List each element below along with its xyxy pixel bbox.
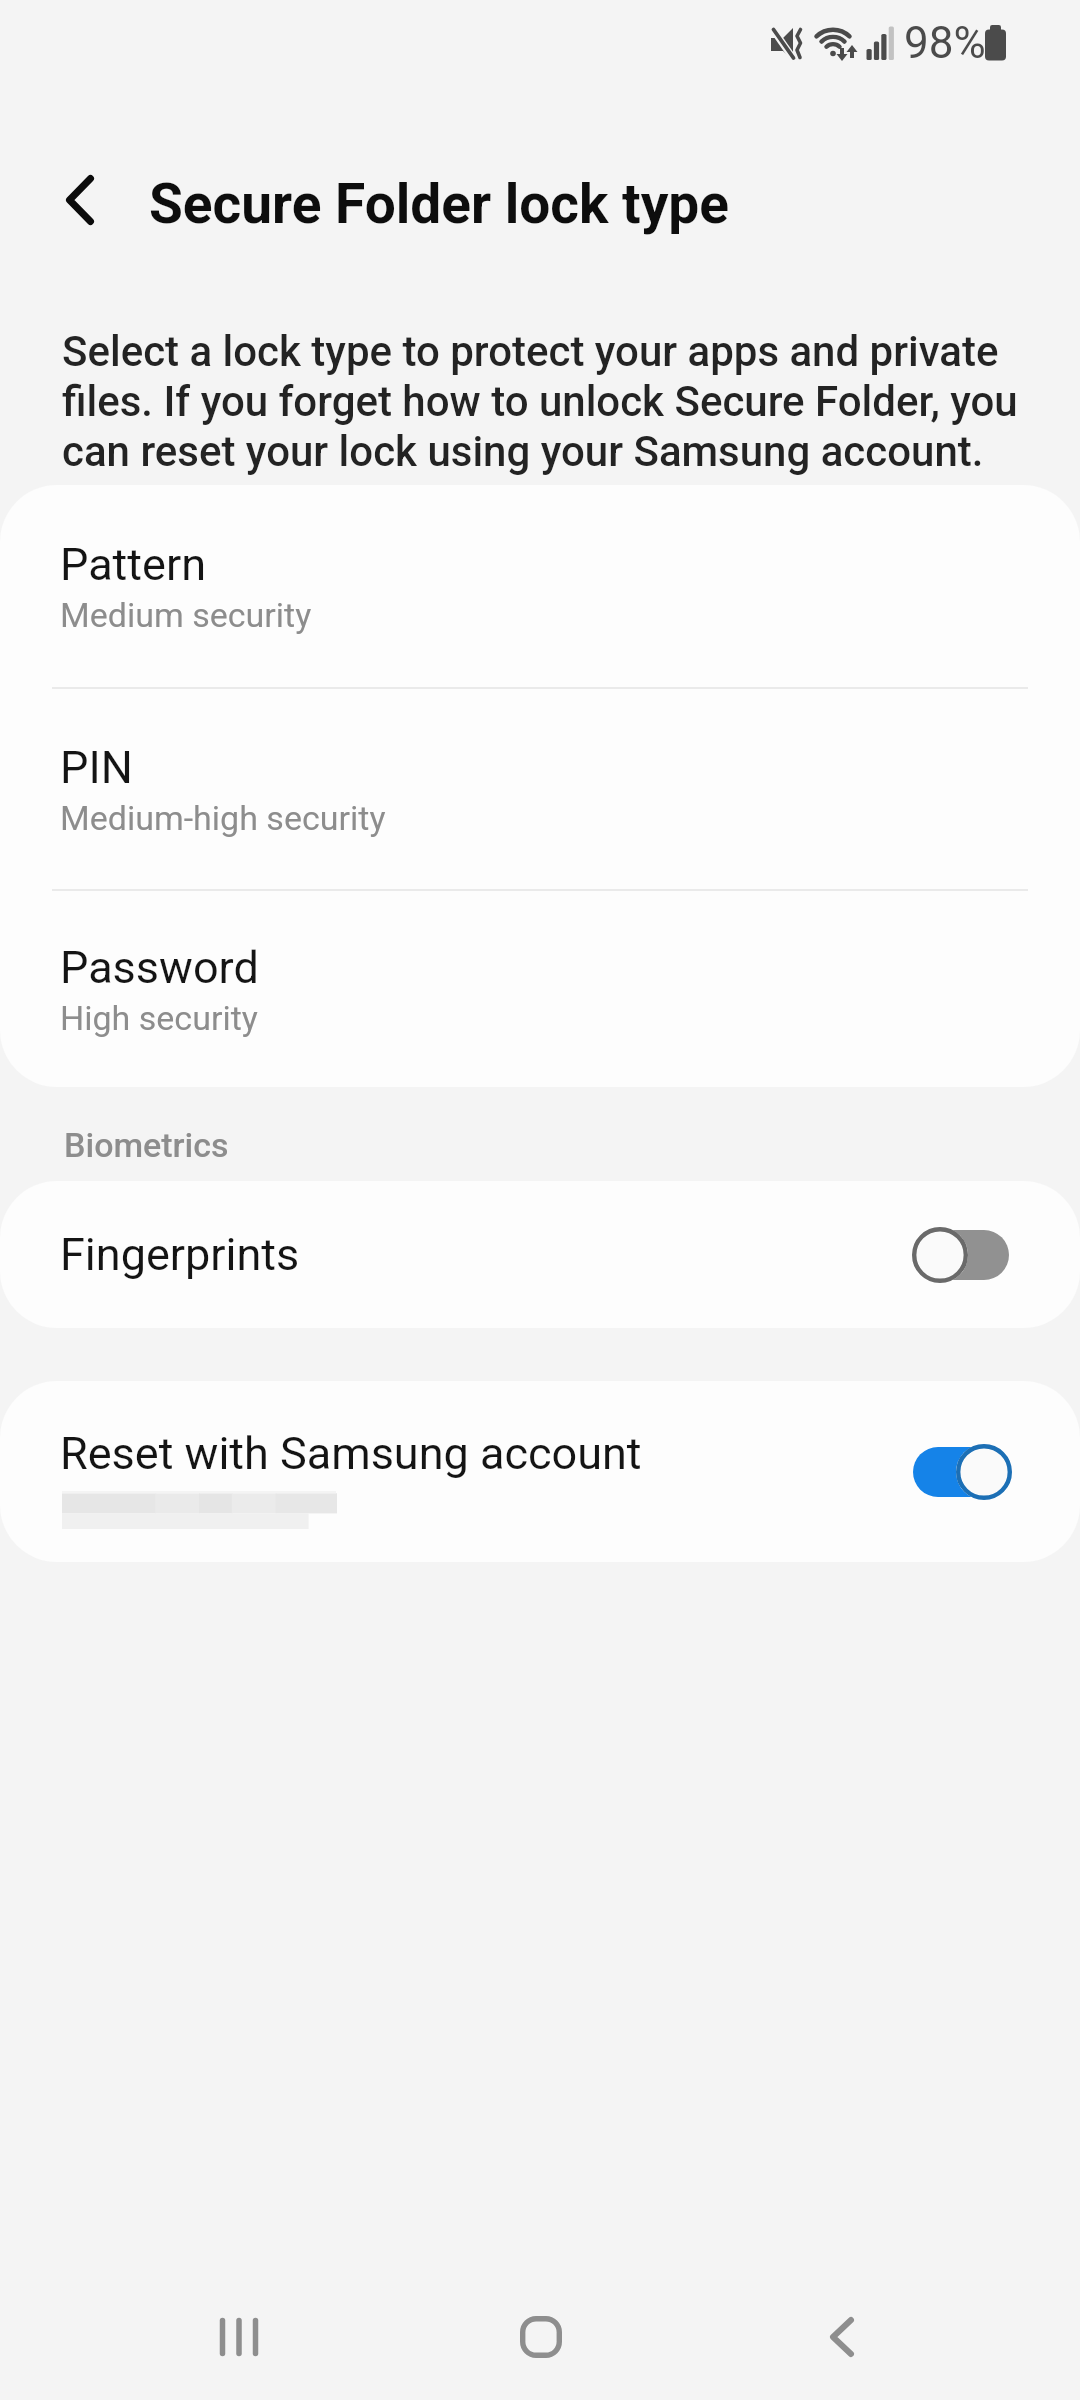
button[interactable]: Navigate up [42,162,118,238]
button[interactable]: Home [451,2247,631,2400]
staticText: Fingerprints [60,1228,300,1281]
staticText: High security [60,998,258,1038]
button[interactable]: Switch off [913,1227,1009,1283]
button[interactable]: Back [752,2247,932,2400]
staticText: Medium-high security [60,798,386,838]
staticText: Pattern [60,538,207,591]
button[interactable]: PIN [0,689,1080,889]
staticText: Secure Folder lock type [149,172,729,236]
staticText: Biometrics [64,1125,229,1165]
button[interactable]: Pattern [0,485,1080,687]
staticText: Reset with Samsung account [60,1427,642,1480]
staticText: Password [60,941,259,994]
staticText: 98% [904,17,986,69]
button[interactable]: Recent apps [149,2247,329,2400]
staticText: Select a lock type to protect your apps … [62,327,1062,476]
button[interactable]: Reset with Samsung account [0,1381,1080,1562]
button[interactable]: Fingerprints [0,1181,1080,1328]
staticText: Medium security [60,595,312,635]
button[interactable]: Password [0,891,1080,1087]
staticText: PIN [60,741,133,794]
button[interactable]: Switch on [913,1444,1009,1500]
